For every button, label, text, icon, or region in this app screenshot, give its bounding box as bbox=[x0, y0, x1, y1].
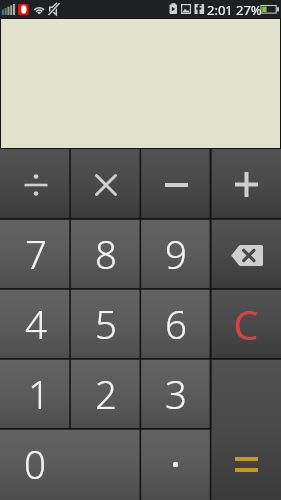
staticText: 3 bbox=[165, 368, 187, 420]
staticText: 27% bbox=[236, 1, 262, 19]
button[interactable]: Equals bbox=[211, 360, 281, 500]
staticText: 1 bbox=[28, 368, 50, 420]
staticText: 4 bbox=[25, 298, 47, 350]
button[interactable]: 3 bbox=[141, 360, 211, 430]
staticText: 2:01 bbox=[207, 1, 233, 19]
button[interactable]: 7 bbox=[0, 220, 71, 290]
button[interactable]: Delete bbox=[211, 220, 281, 290]
staticText: C bbox=[233, 297, 259, 351]
button[interactable]: 8 bbox=[71, 220, 141, 290]
button[interactable]: 1 bbox=[0, 360, 71, 430]
button[interactable]: C bbox=[211, 290, 281, 360]
button[interactable]: 4 bbox=[0, 290, 71, 360]
button[interactable]: 6 bbox=[141, 290, 211, 360]
staticText: 6 bbox=[165, 298, 187, 350]
button[interactable]: 5 bbox=[71, 290, 141, 360]
button[interactable]: 0 bbox=[0, 430, 141, 500]
button[interactable]: Multiply bbox=[71, 149, 141, 220]
button[interactable]: Divide bbox=[0, 149, 71, 220]
staticText: 0 bbox=[24, 438, 46, 490]
staticText: 8 bbox=[95, 228, 117, 280]
button[interactable]: Minus bbox=[141, 149, 211, 220]
button[interactable] bbox=[141, 430, 211, 500]
staticText: 5 bbox=[95, 298, 117, 350]
staticText: 7 bbox=[25, 228, 47, 280]
button[interactable]: Plus bbox=[211, 149, 281, 220]
staticText: 9 bbox=[165, 228, 187, 280]
button[interactable]: 9 bbox=[141, 220, 211, 290]
staticText: 2 bbox=[95, 368, 117, 420]
button[interactable]: 2 bbox=[71, 360, 141, 430]
